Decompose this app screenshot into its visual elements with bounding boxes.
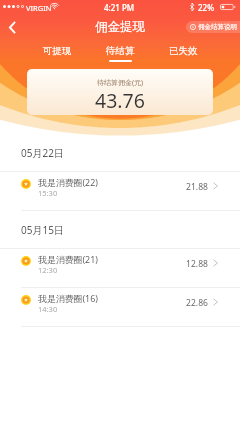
staticText: 我是消费圈(22) xyxy=(38,176,98,188)
staticText: 05月15日 xyxy=(21,223,64,237)
staticText: 22.86 xyxy=(186,297,208,309)
staticText: 21.88 xyxy=(186,181,208,193)
staticText: 05月22日 xyxy=(21,146,64,160)
staticText: 12.88 xyxy=(186,258,208,270)
button[interactable]: 已失效 xyxy=(152,40,215,64)
button[interactable]: 我是消费圈(21) xyxy=(0,249,240,287)
button[interactable]: 佣金结算说明 xyxy=(186,21,240,33)
button[interactable]: Back xyxy=(0,14,28,40)
button[interactable]: 待结算 xyxy=(89,40,152,64)
button[interactable]: 我是消费圈(16) xyxy=(0,288,240,326)
button[interactable]: 可提现 xyxy=(26,40,89,64)
staticText: 我是消费圈(21) xyxy=(38,253,98,265)
staticText: 佣金结算说明 xyxy=(198,23,237,31)
staticText: 我是消费圈(16) xyxy=(38,292,98,304)
staticText: 12:30 xyxy=(38,265,58,275)
staticText: 已失效 xyxy=(169,45,198,57)
staticText: 14:30 xyxy=(38,304,58,314)
staticText: 15:30 xyxy=(38,188,58,198)
staticText: 可提现 xyxy=(43,45,72,57)
staticText: 待结算佣金(元) xyxy=(97,78,144,88)
staticText: 待结算 xyxy=(106,45,135,57)
staticText: 22% xyxy=(198,2,214,13)
button[interactable]: 待结算佣金(元) xyxy=(27,69,213,115)
staticText: 佣金提现 xyxy=(95,19,145,35)
staticText: VIRGIN xyxy=(26,3,52,13)
staticText: 43.76 xyxy=(95,87,145,114)
button[interactable]: 我是消费圈(22) xyxy=(0,172,240,210)
staticText: 4:21 PM xyxy=(104,2,135,13)
